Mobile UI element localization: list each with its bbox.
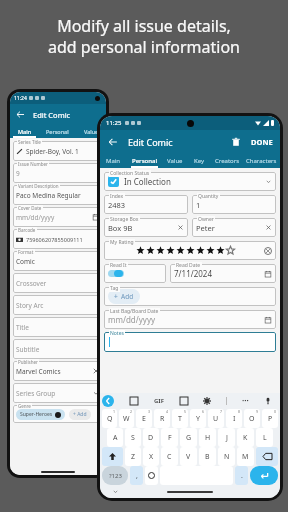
button[interactable]: Y	[190, 409, 206, 428]
button[interactable]: W	[119, 409, 134, 428]
button[interactable]: Crossover	[13, 273, 103, 293]
button[interactable]: R	[154, 409, 170, 428]
button[interactable]: Value	[76, 125, 106, 138]
button[interactable]: Subtitle	[13, 339, 103, 359]
button[interactable]: Delete	[231, 137, 241, 147]
button[interactable]: Stickers	[130, 397, 138, 405]
button[interactable]: Value	[162, 154, 188, 168]
button[interactable]: Notes	[104, 332, 276, 352]
button[interactable]: Characters	[243, 154, 280, 168]
staticText: L	[263, 433, 267, 443]
staticText: H	[205, 433, 211, 443]
staticText: Variant Description	[18, 183, 59, 189]
button[interactable]: mm/dd/yyyy	[13, 207, 103, 227]
button[interactable]: J	[218, 428, 235, 447]
button[interactable]: ?123	[102, 466, 128, 485]
button[interactable]: Hide keyboard	[112, 488, 119, 495]
button[interactable]: I	[226, 409, 242, 428]
button[interactable]: A	[107, 428, 123, 447]
button[interactable]: T	[172, 409, 188, 428]
button[interactable]: Personal	[39, 125, 76, 138]
staticText: R	[160, 414, 165, 424]
staticText: 5	[184, 409, 187, 414]
button[interactable]: X	[143, 447, 159, 466]
staticText: Creators	[215, 157, 240, 165]
button[interactable]	[108, 270, 124, 277]
button[interactable]: Clipboard	[180, 397, 188, 405]
button[interactable]: H	[199, 428, 216, 447]
button[interactable]: Shift	[102, 447, 123, 466]
button[interactable]: G	[180, 428, 197, 447]
staticText: Tag	[110, 285, 119, 292]
button[interactable]: Personal	[127, 154, 162, 168]
button[interactable]: Marvel Comics	[13, 361, 103, 381]
button[interactable]: B	[199, 447, 216, 466]
button[interactable]: ,	[130, 466, 143, 485]
button[interactable]: Peter	[192, 218, 276, 237]
button[interactable]: 7/11/2024	[170, 264, 276, 283]
button[interactable]: 759606207855009111	[13, 229, 103, 249]
button[interactable]: M	[237, 447, 254, 466]
button[interactable]: Comic	[13, 251, 103, 271]
button[interactable]: Main	[100, 154, 127, 168]
button[interactable]: Key	[188, 154, 211, 168]
button[interactable]: DONE	[251, 137, 273, 147]
staticText: Personal	[46, 128, 69, 135]
button[interactable]: Read It	[104, 264, 166, 283]
button[interactable]: Emoji	[145, 466, 158, 485]
button[interactable]: 2483	[104, 195, 188, 214]
button[interactable]: O	[244, 409, 260, 428]
staticText: Q	[107, 414, 113, 424]
staticText: Characters	[246, 157, 277, 165]
button[interactable]: Voice input	[264, 397, 272, 405]
button[interactable]: Expand toolbar	[102, 395, 114, 407]
staticText: P	[268, 414, 273, 424]
button[interactable]: 1	[192, 195, 276, 214]
button[interactable]: Back	[107, 136, 119, 148]
button[interactable]: E	[136, 409, 152, 428]
button[interactable]: F	[161, 428, 178, 447]
button[interactable]: Creators	[211, 154, 243, 168]
button[interactable]: V	[180, 447, 197, 466]
button[interactable]: C	[161, 447, 178, 466]
button[interactable]: More	[242, 397, 249, 405]
button[interactable]: Main	[10, 125, 39, 138]
button[interactable]: Z	[125, 447, 141, 466]
staticText: G	[186, 433, 192, 443]
staticText: Personal	[132, 157, 158, 165]
button[interactable]: In Collection	[104, 172, 276, 191]
staticText: A	[113, 433, 118, 443]
button[interactable]: Box 9B	[104, 218, 188, 237]
button[interactable]: Settings	[203, 397, 211, 405]
button[interactable]: Super-Heroes	[20, 411, 61, 418]
button[interactable]: Back	[15, 109, 26, 120]
button[interactable]: Q	[102, 409, 117, 428]
button[interactable]: K	[237, 428, 254, 447]
button[interactable]: P	[262, 409, 278, 428]
button[interactable]: Title	[13, 317, 103, 337]
staticText: N	[224, 452, 230, 462]
button[interactable]: U	[208, 409, 224, 428]
button[interactable]: + Add	[104, 287, 276, 306]
button[interactable]: N	[218, 447, 235, 466]
button[interactable]: S	[125, 428, 141, 447]
button[interactable]: Story Arc	[13, 295, 103, 315]
staticText: C	[167, 452, 172, 462]
button[interactable]: Enter	[250, 466, 278, 485]
button[interactable]: GIF	[154, 397, 164, 405]
button[interactable]: .	[235, 466, 248, 485]
button[interactable]: + Add	[73, 411, 87, 418]
button[interactable]: mm/dd/yyyy	[104, 310, 276, 329]
button[interactable]: 9	[13, 163, 103, 183]
button[interactable]: D	[143, 428, 159, 447]
staticText: Crossover	[16, 279, 47, 288]
button[interactable]: + Add	[114, 292, 134, 301]
button[interactable]: L	[256, 428, 273, 447]
button[interactable]: My Rating	[104, 241, 276, 260]
button[interactable]: Paco Medina Regular	[13, 185, 103, 205]
button[interactable]: Series Group	[13, 383, 103, 403]
button[interactable]: Backspace	[256, 447, 278, 466]
staticText: S	[131, 433, 135, 443]
button[interactable]: Spider-Boy, Vol. 1	[13, 141, 103, 161]
